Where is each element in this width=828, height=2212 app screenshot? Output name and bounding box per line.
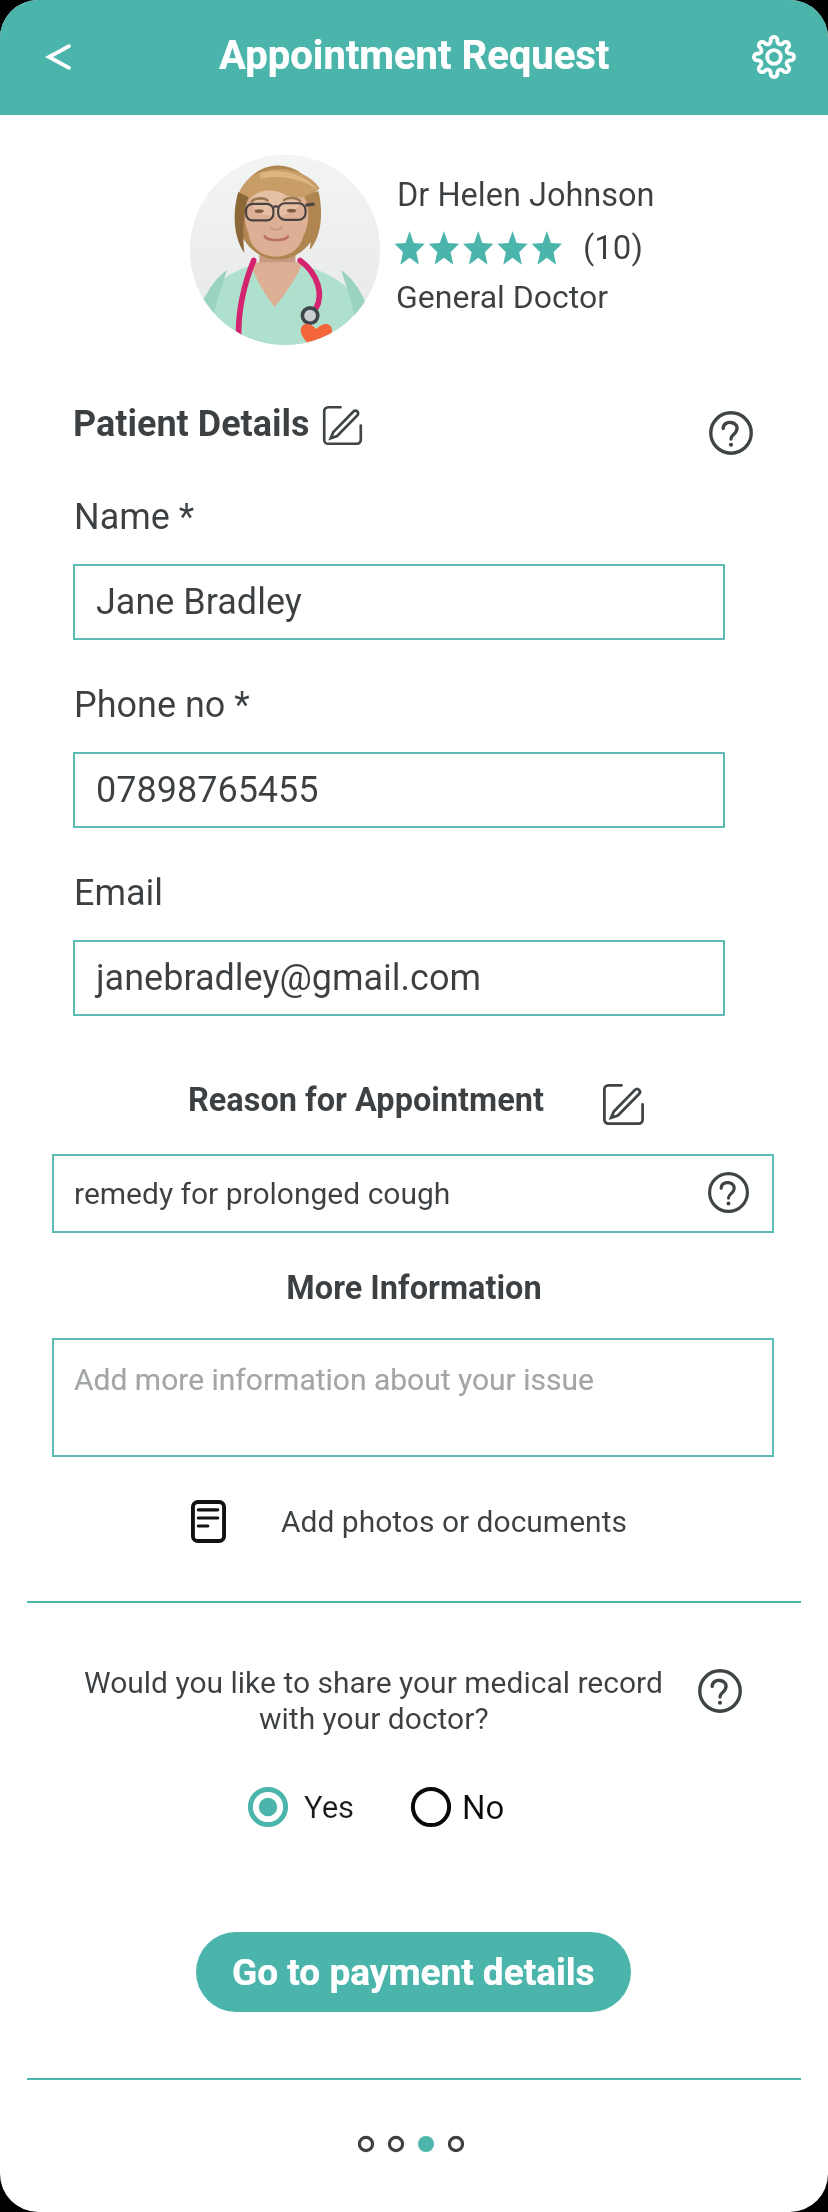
staticText: No — [462, 1788, 505, 1827]
button[interactable]: Add photos or documents — [191, 1492, 627, 1535]
staticText: remedy for prolonged cough — [74, 1176, 451, 1211]
button[interactable]: Page 4 — [441, 2129, 471, 2159]
staticText: Reason for Appointment — [188, 1081, 545, 1119]
button[interactable]: Page 1 — [351, 2129, 381, 2159]
button[interactable]: Help — [708, 410, 754, 456]
button[interactable]: Add more information about your issue — [52, 1338, 774, 1457]
button[interactable]: Help about sharing — [697, 1668, 743, 1714]
staticText: Add photos or documents — [281, 1504, 627, 1539]
button[interactable]: Page 3 — [411, 2129, 441, 2159]
staticText: Jane Bradley — [96, 581, 302, 623]
staticText: Name * — [74, 496, 195, 538]
button[interactable]: Edit patient details — [321, 404, 364, 447]
button[interactable]: No — [411, 1787, 505, 1827]
staticText: 07898765455 — [96, 769, 319, 811]
staticText: General Doctor — [396, 278, 608, 316]
staticText: Add more information about your issue — [74, 1362, 594, 1397]
staticText: with your doctor? — [259, 1701, 489, 1736]
staticText: Yes — [304, 1789, 355, 1825]
button[interactable]: Help about reason — [707, 1171, 750, 1214]
staticText: janebradley@gmail.com — [96, 957, 482, 999]
button[interactable]: Edit reason — [601, 1082, 646, 1127]
button[interactable]: janebradley@gmail.com — [73, 940, 725, 1016]
staticText: Patient Details — [73, 403, 310, 445]
staticText: Appointment Request — [219, 32, 610, 79]
staticText: Would you like to share your medical rec… — [84, 1665, 663, 1700]
staticText: More Information — [0, 1269, 828, 1307]
button[interactable]: remedy for prolonged cough — [52, 1154, 774, 1233]
staticText: Phone no * — [74, 684, 250, 726]
button[interactable]: Back — [30, 28, 88, 86]
button[interactable]: Page 2 — [381, 2129, 411, 2159]
staticText: Go to payment details — [232, 1951, 595, 1994]
button[interactable]: Jane Bradley — [73, 564, 725, 640]
staticText: (10) — [583, 228, 643, 267]
staticText: Dr Helen Johnson — [397, 176, 655, 214]
button[interactable]: 07898765455 — [73, 752, 725, 828]
button[interactable]: Go to payment details — [196, 1932, 631, 2012]
button[interactable]: Yes — [248, 1787, 355, 1827]
staticText: Email — [74, 872, 164, 914]
button[interactable]: Settings — [752, 35, 796, 79]
